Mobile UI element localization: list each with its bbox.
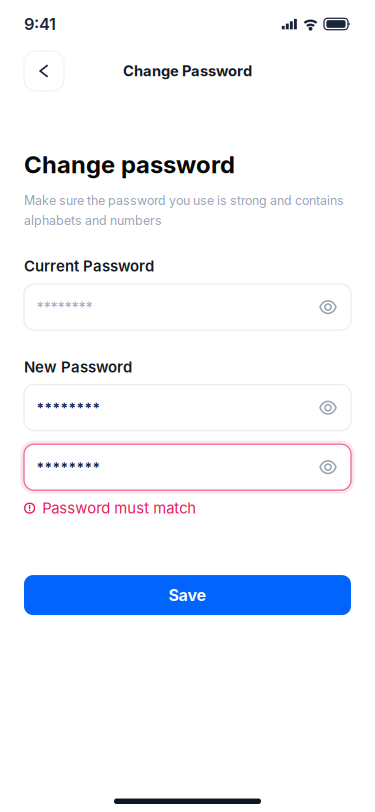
button[interactable]: Save — [24, 575, 351, 615]
button[interactable]: Show password — [312, 291, 344, 323]
staticText: ******** — [36, 459, 100, 475]
staticText: alphabets and numbers — [24, 213, 162, 228]
staticText: Change password — [24, 150, 235, 179]
staticText: Change Password — [123, 62, 252, 80]
staticText: 9:41 — [24, 14, 56, 34]
staticText: ******** — [36, 399, 100, 416]
staticText: New Password — [24, 358, 132, 376]
staticText: ******** — [36, 298, 92, 316]
button[interactable]: Back — [24, 51, 64, 91]
staticText: Save — [168, 585, 206, 605]
staticText: Password must match — [42, 499, 196, 517]
staticText: Make sure the password you use is strong… — [24, 193, 344, 208]
button[interactable]: Show password — [312, 392, 344, 424]
button[interactable]: Show password — [312, 451, 344, 483]
staticText: Current Password — [24, 257, 154, 275]
